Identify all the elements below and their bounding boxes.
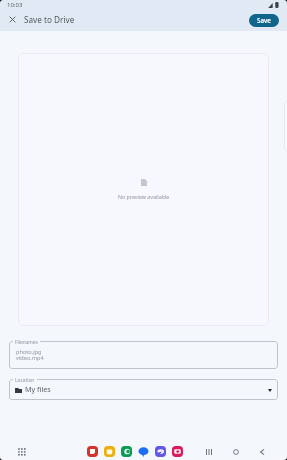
button[interactable]: All apps (13, 443, 29, 459)
staticText: 10:03 (7, 1, 23, 9)
button[interactable]: Close (6, 13, 19, 26)
button[interactable]: Messages (138, 446, 149, 457)
button[interactable]: Chat (121, 446, 132, 457)
button[interactable]: Browser (155, 446, 166, 457)
staticText: My files (25, 384, 51, 394)
staticText: Save to Drive (24, 14, 75, 25)
button[interactable]: Home (228, 444, 244, 460)
button[interactable]: Keep notes (87, 446, 98, 457)
staticText: Filenames (15, 339, 38, 346)
staticText: No preview available (118, 193, 170, 200)
button[interactable]: My files (9, 379, 278, 400)
button[interactable]: Files (104, 446, 115, 457)
staticText: Save (257, 16, 271, 24)
staticText: photo.jpg video.mp4 (16, 348, 44, 362)
button[interactable]: Back (254, 444, 270, 460)
staticText: Location (15, 377, 35, 384)
button[interactable]: Recent apps (201, 444, 217, 460)
button[interactable]: photo.jpg video.mp4 (9, 341, 278, 369)
button[interactable]: Camera (172, 446, 183, 457)
button[interactable]: Save (249, 14, 279, 27)
